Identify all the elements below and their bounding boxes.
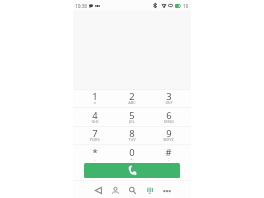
staticText: # — [165, 146, 172, 159]
staticText: 8 — [129, 127, 135, 140]
staticText: ABC — [128, 100, 136, 105]
button[interactable]: 7 — [76, 126, 113, 145]
staticText: 2 — [129, 90, 135, 103]
button[interactable]: More — [158, 182, 175, 198]
staticText: ; — [168, 156, 170, 161]
staticText: * — [92, 146, 98, 159]
button[interactable]: 6 — [150, 108, 187, 127]
button[interactable]: 5 — [113, 108, 150, 127]
button[interactable]: # — [150, 145, 187, 164]
staticText: GHI — [91, 119, 99, 124]
staticText: 10 — [183, 3, 189, 9]
staticText: PQRS — [89, 137, 100, 142]
button[interactable]: Contacts — [107, 182, 124, 198]
staticText: + — [130, 156, 133, 161]
staticText: 10:38 — [75, 3, 87, 9]
button[interactable]: 4 — [76, 108, 113, 127]
button[interactable]: Back — [90, 182, 107, 198]
staticText: 9 — [166, 127, 172, 140]
staticText: 7 — [92, 127, 98, 140]
button[interactable]: Call — [84, 163, 180, 178]
button[interactable]: 8 — [113, 126, 150, 145]
button[interactable]: Dialpad — [141, 182, 158, 198]
button[interactable]: * — [76, 145, 113, 164]
staticText: 1 — [92, 90, 98, 103]
button[interactable]: 3 — [150, 89, 187, 108]
staticText: , — [94, 156, 96, 161]
staticText: 0 — [129, 146, 135, 159]
staticText: JKL — [129, 119, 135, 124]
button[interactable]: 2 — [113, 89, 150, 108]
staticText: TUV — [128, 137, 136, 142]
staticText: 5 — [129, 109, 135, 122]
button[interactable]: Search — [124, 182, 141, 198]
button[interactable]: 9 — [150, 126, 187, 145]
button[interactable]: 1 — [76, 89, 113, 108]
staticText: 4 — [92, 109, 98, 122]
staticText: 3 — [166, 90, 172, 103]
button[interactable]: 0 — [113, 145, 150, 164]
staticText: DEF — [165, 100, 173, 105]
staticText: WXYZ — [163, 137, 174, 142]
staticText: 6 — [166, 109, 172, 122]
staticText: MNO — [164, 119, 174, 124]
staticText: ∞ — [93, 100, 97, 105]
